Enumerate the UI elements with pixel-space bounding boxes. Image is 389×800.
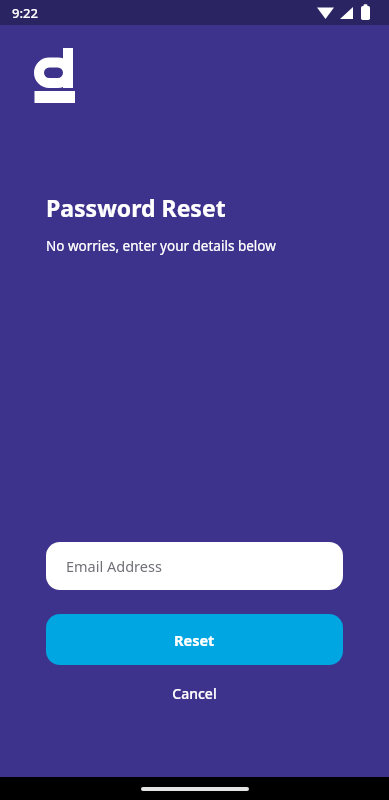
staticText: No worries, enter your details below (46, 237, 276, 255)
staticText: Cancel (172, 684, 217, 703)
button[interactable]: Email Address (46, 542, 343, 590)
other: App logo (34, 46, 80, 104)
staticText: Reset (174, 630, 215, 650)
button[interactable]: Cancel (46, 678, 343, 708)
staticText: 9:22 (12, 4, 38, 22)
button[interactable]: Reset (46, 614, 343, 665)
other: Status icons (317, 5, 379, 21)
staticText: Password Reset (46, 192, 226, 223)
staticText: Email Address (66, 556, 162, 576)
